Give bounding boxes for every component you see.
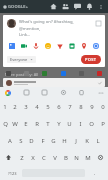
button[interactable]: App 2 bbox=[22, 69, 31, 78]
button[interactable]: B bbox=[60, 149, 71, 166]
button[interactable]: H bbox=[59, 132, 70, 149]
button[interactable]: More bbox=[96, 88, 105, 97]
button[interactable]: C bbox=[38, 149, 49, 166]
button[interactable]: Z bbox=[16, 149, 27, 166]
button[interactable]: U bbox=[64, 115, 75, 132]
button[interactable]: M bbox=[82, 149, 93, 166]
staticText: D bbox=[29, 137, 34, 145]
staticText: . bbox=[94, 170, 96, 177]
staticText: Y bbox=[57, 120, 61, 128]
staticText: R bbox=[35, 120, 39, 128]
button[interactable]: 1 bbox=[0, 98, 10, 115]
button[interactable]: Messages bbox=[73, 2, 82, 11]
staticText: C bbox=[42, 154, 46, 162]
button[interactable]: 6 bbox=[53, 98, 64, 115]
staticText: Q bbox=[3, 120, 8, 128]
button[interactable]: More posts by: All bbox=[5, 72, 108, 77]
button[interactable]: Photo bbox=[7, 41, 17, 51]
button[interactable]: Formatting bbox=[94, 19, 102, 27]
button[interactable]: Location bbox=[79, 41, 89, 51]
staticText: K bbox=[85, 137, 89, 145]
staticText: N bbox=[74, 154, 79, 162]
button[interactable]: Q bbox=[0, 115, 10, 132]
button[interactable]: L bbox=[92, 132, 103, 149]
staticText: ?123 bbox=[8, 171, 17, 176]
button[interactable]: More options bbox=[97, 3, 105, 11]
button[interactable]: N bbox=[71, 149, 82, 166]
button[interactable]: App 1 bbox=[4, 69, 13, 78]
staticText: POST bbox=[85, 57, 97, 62]
button[interactable]: People bbox=[61, 2, 70, 11]
staticText: Everyone bbox=[10, 57, 28, 62]
button[interactable]: K bbox=[81, 132, 92, 149]
button[interactable]: S bbox=[15, 132, 26, 149]
staticText: M bbox=[85, 154, 91, 162]
button[interactable]: R bbox=[31, 115, 42, 132]
button[interactable]: 4 bbox=[31, 98, 42, 115]
staticText: What's going on? #hashtag, @mention, Lin… bbox=[19, 19, 92, 37]
button[interactable]: POST bbox=[81, 55, 101, 64]
button[interactable]: Clipboard bbox=[77, 88, 86, 97]
staticText: T bbox=[46, 120, 50, 128]
button[interactable]: T bbox=[42, 115, 53, 132]
button[interactable]: Everyone bbox=[7, 56, 36, 63]
button[interactable]: Notifications bbox=[85, 2, 94, 11]
staticText: I bbox=[79, 120, 82, 128]
staticText: 7 bbox=[68, 103, 72, 111]
button[interactable]: App 4 bbox=[59, 69, 68, 78]
button[interactable]: Event bbox=[67, 41, 77, 51]
staticText: U bbox=[67, 120, 72, 128]
staticText: 3 bbox=[24, 103, 28, 111]
staticText: 6 bbox=[57, 103, 61, 111]
button[interactable]: W bbox=[10, 115, 20, 132]
button[interactable]: ?123 bbox=[3, 166, 22, 180]
button[interactable]: A bbox=[5, 132, 15, 149]
button[interactable]: 3 bbox=[20, 98, 31, 115]
button[interactable]: 9 bbox=[86, 98, 97, 115]
button[interactable]: V bbox=[49, 149, 60, 166]
button[interactable]: Mood bbox=[31, 41, 41, 51]
staticText: 8 bbox=[79, 103, 83, 111]
button[interactable]: Google bbox=[3, 88, 12, 97]
button[interactable]: Backspace bbox=[93, 149, 108, 166]
staticText: L bbox=[96, 137, 100, 145]
staticText: More posts by: All bbox=[5, 72, 39, 77]
button[interactable]: Settings bbox=[59, 88, 68, 97]
staticText: G bbox=[51, 137, 56, 145]
button[interactable]: Stickers bbox=[22, 88, 31, 97]
button[interactable]: Link bbox=[91, 41, 101, 51]
staticText: J bbox=[75, 137, 77, 145]
button[interactable]: J bbox=[70, 132, 81, 149]
button[interactable]: G bbox=[48, 132, 59, 149]
button[interactable]: O bbox=[86, 115, 97, 132]
button[interactable]: D bbox=[26, 132, 37, 149]
button[interactable]: GIF bbox=[40, 88, 49, 97]
button[interactable]: P bbox=[97, 115, 108, 132]
staticText: X bbox=[31, 154, 35, 162]
staticText: V bbox=[53, 154, 57, 162]
button[interactable]: 7 bbox=[64, 98, 75, 115]
button[interactable]: E bbox=[20, 115, 31, 132]
button[interactable]: Shopping bbox=[55, 41, 65, 51]
button[interactable]: App 5 bbox=[77, 69, 86, 78]
button[interactable]: 0 bbox=[97, 98, 108, 115]
button[interactable]: Y bbox=[53, 115, 64, 132]
button[interactable]: App 3 bbox=[40, 69, 49, 78]
button[interactable]: Shift bbox=[0, 149, 16, 166]
button[interactable]: Home bbox=[49, 2, 58, 11]
staticText: Z bbox=[20, 154, 24, 162]
staticText: 9 bbox=[90, 103, 94, 111]
button[interactable]: App 6 bbox=[95, 69, 104, 78]
staticText: GOOGLE+ bbox=[8, 4, 29, 9]
button[interactable]: 5 bbox=[42, 98, 53, 115]
button[interactable]: I bbox=[75, 115, 86, 132]
button[interactable]: Emoji bbox=[43, 41, 53, 51]
button[interactable]: 2 bbox=[10, 98, 20, 115]
button[interactable]: 8 bbox=[75, 98, 86, 115]
button[interactable]: F bbox=[37, 132, 48, 149]
staticText: 0 bbox=[101, 103, 105, 111]
button[interactable]: Video bbox=[19, 41, 29, 51]
button[interactable]: X bbox=[27, 149, 38, 166]
